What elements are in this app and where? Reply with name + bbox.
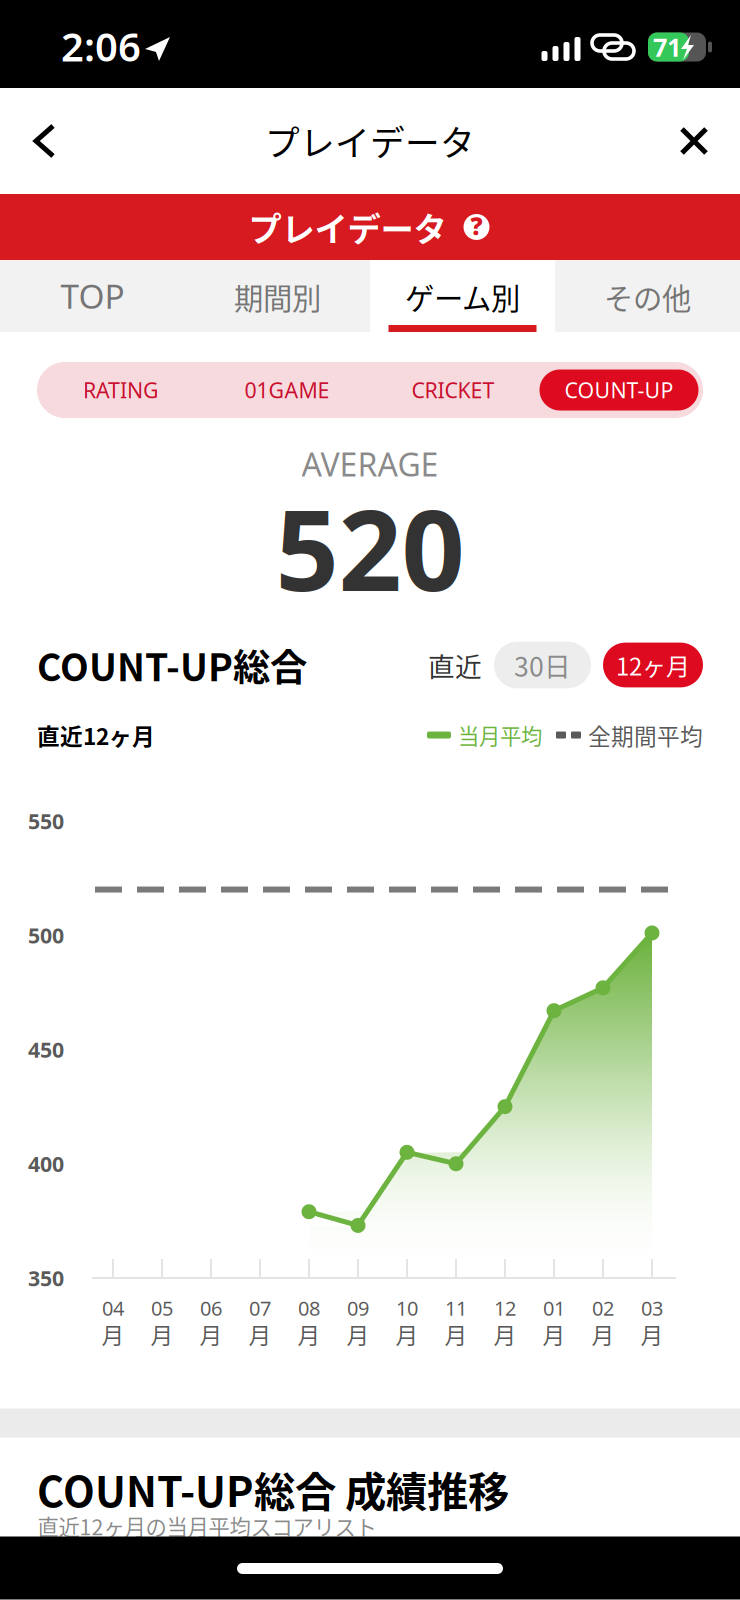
staticText: 05 xyxy=(151,1295,173,1321)
staticText: COUNT-UP xyxy=(564,376,673,404)
staticText: 12ヶ月 xyxy=(616,648,690,682)
staticText: 03 xyxy=(641,1295,663,1321)
staticText: 350 xyxy=(28,1264,64,1292)
staticText: 520 xyxy=(275,474,464,621)
button[interactable]: 30日 xyxy=(494,642,591,688)
staticText: 月 xyxy=(297,1318,320,1350)
button[interactable]: Close xyxy=(656,93,732,189)
button[interactable]: 期間別 xyxy=(185,260,370,332)
staticText: プレイデータ xyxy=(265,116,475,166)
staticText: COUNT-UP総合 成績推移 xyxy=(37,1459,509,1519)
staticText: 30日 xyxy=(514,646,571,684)
button[interactable]: その他 xyxy=(555,260,740,332)
staticText: 期間別 xyxy=(234,275,321,318)
staticText: AVERAGE xyxy=(301,443,438,485)
staticText: その他 xyxy=(604,275,691,318)
staticText: 月 xyxy=(346,1318,369,1350)
staticText: 04 xyxy=(102,1295,124,1321)
staticText: 09 xyxy=(347,1295,369,1321)
button[interactable]: RATING xyxy=(38,362,204,418)
button[interactable]: Help xyxy=(461,212,491,242)
staticText: ゲーム別 xyxy=(405,275,520,318)
staticText: 月 xyxy=(493,1318,516,1350)
button[interactable]: TOP xyxy=(0,260,185,332)
staticText: 01GAME xyxy=(244,376,329,404)
staticText: 06 xyxy=(200,1295,222,1321)
staticText: TOP xyxy=(60,274,124,318)
staticText: 450 xyxy=(28,1035,64,1064)
staticText: 71 xyxy=(653,30,681,64)
staticText: 11 xyxy=(445,1295,467,1321)
staticText: 400 xyxy=(28,1150,64,1178)
staticText: 直近12ヶ月 xyxy=(37,719,155,751)
staticText: 直近12ヶ月の当月平均スコアリスト xyxy=(37,1511,376,1541)
staticText: ? xyxy=(470,210,482,242)
button[interactable]: ゲーム別 xyxy=(370,260,555,332)
staticText: 12 xyxy=(494,1295,516,1321)
staticText: 月 xyxy=(444,1318,467,1350)
button[interactable]: CRICKET xyxy=(370,362,536,418)
staticText: 月 xyxy=(542,1318,565,1350)
staticText: プレイデータ xyxy=(248,203,446,251)
staticText: COUNT-UP総合 xyxy=(37,638,307,692)
staticText: 07 xyxy=(249,1295,271,1321)
staticText: 月 xyxy=(101,1318,124,1350)
staticText: 2:06 xyxy=(61,19,141,72)
staticText: 550 xyxy=(28,807,64,835)
staticText: 01 xyxy=(543,1295,565,1321)
staticText: 直近 xyxy=(428,646,482,684)
button[interactable]: COUNT-UP xyxy=(536,362,702,418)
staticText: 02 xyxy=(592,1295,614,1321)
staticText: 全期間平均 xyxy=(588,719,703,751)
staticText: 月 xyxy=(150,1318,173,1350)
button[interactable]: Back xyxy=(8,93,81,189)
staticText: 月 xyxy=(640,1318,663,1350)
staticText: 10 xyxy=(396,1295,418,1321)
button[interactable]: 01GAME xyxy=(204,362,370,418)
staticText: 500 xyxy=(28,921,64,949)
staticText: 月 xyxy=(199,1318,222,1350)
button[interactable]: 12ヶ月 xyxy=(603,643,703,687)
staticText: CRICKET xyxy=(411,376,494,404)
staticText: 月 xyxy=(591,1318,614,1350)
staticText: 月 xyxy=(395,1318,418,1350)
staticText: 当月平均 xyxy=(458,720,542,750)
staticText: RATING xyxy=(83,376,159,404)
staticText: 08 xyxy=(298,1295,320,1321)
staticText: 月 xyxy=(248,1318,271,1350)
